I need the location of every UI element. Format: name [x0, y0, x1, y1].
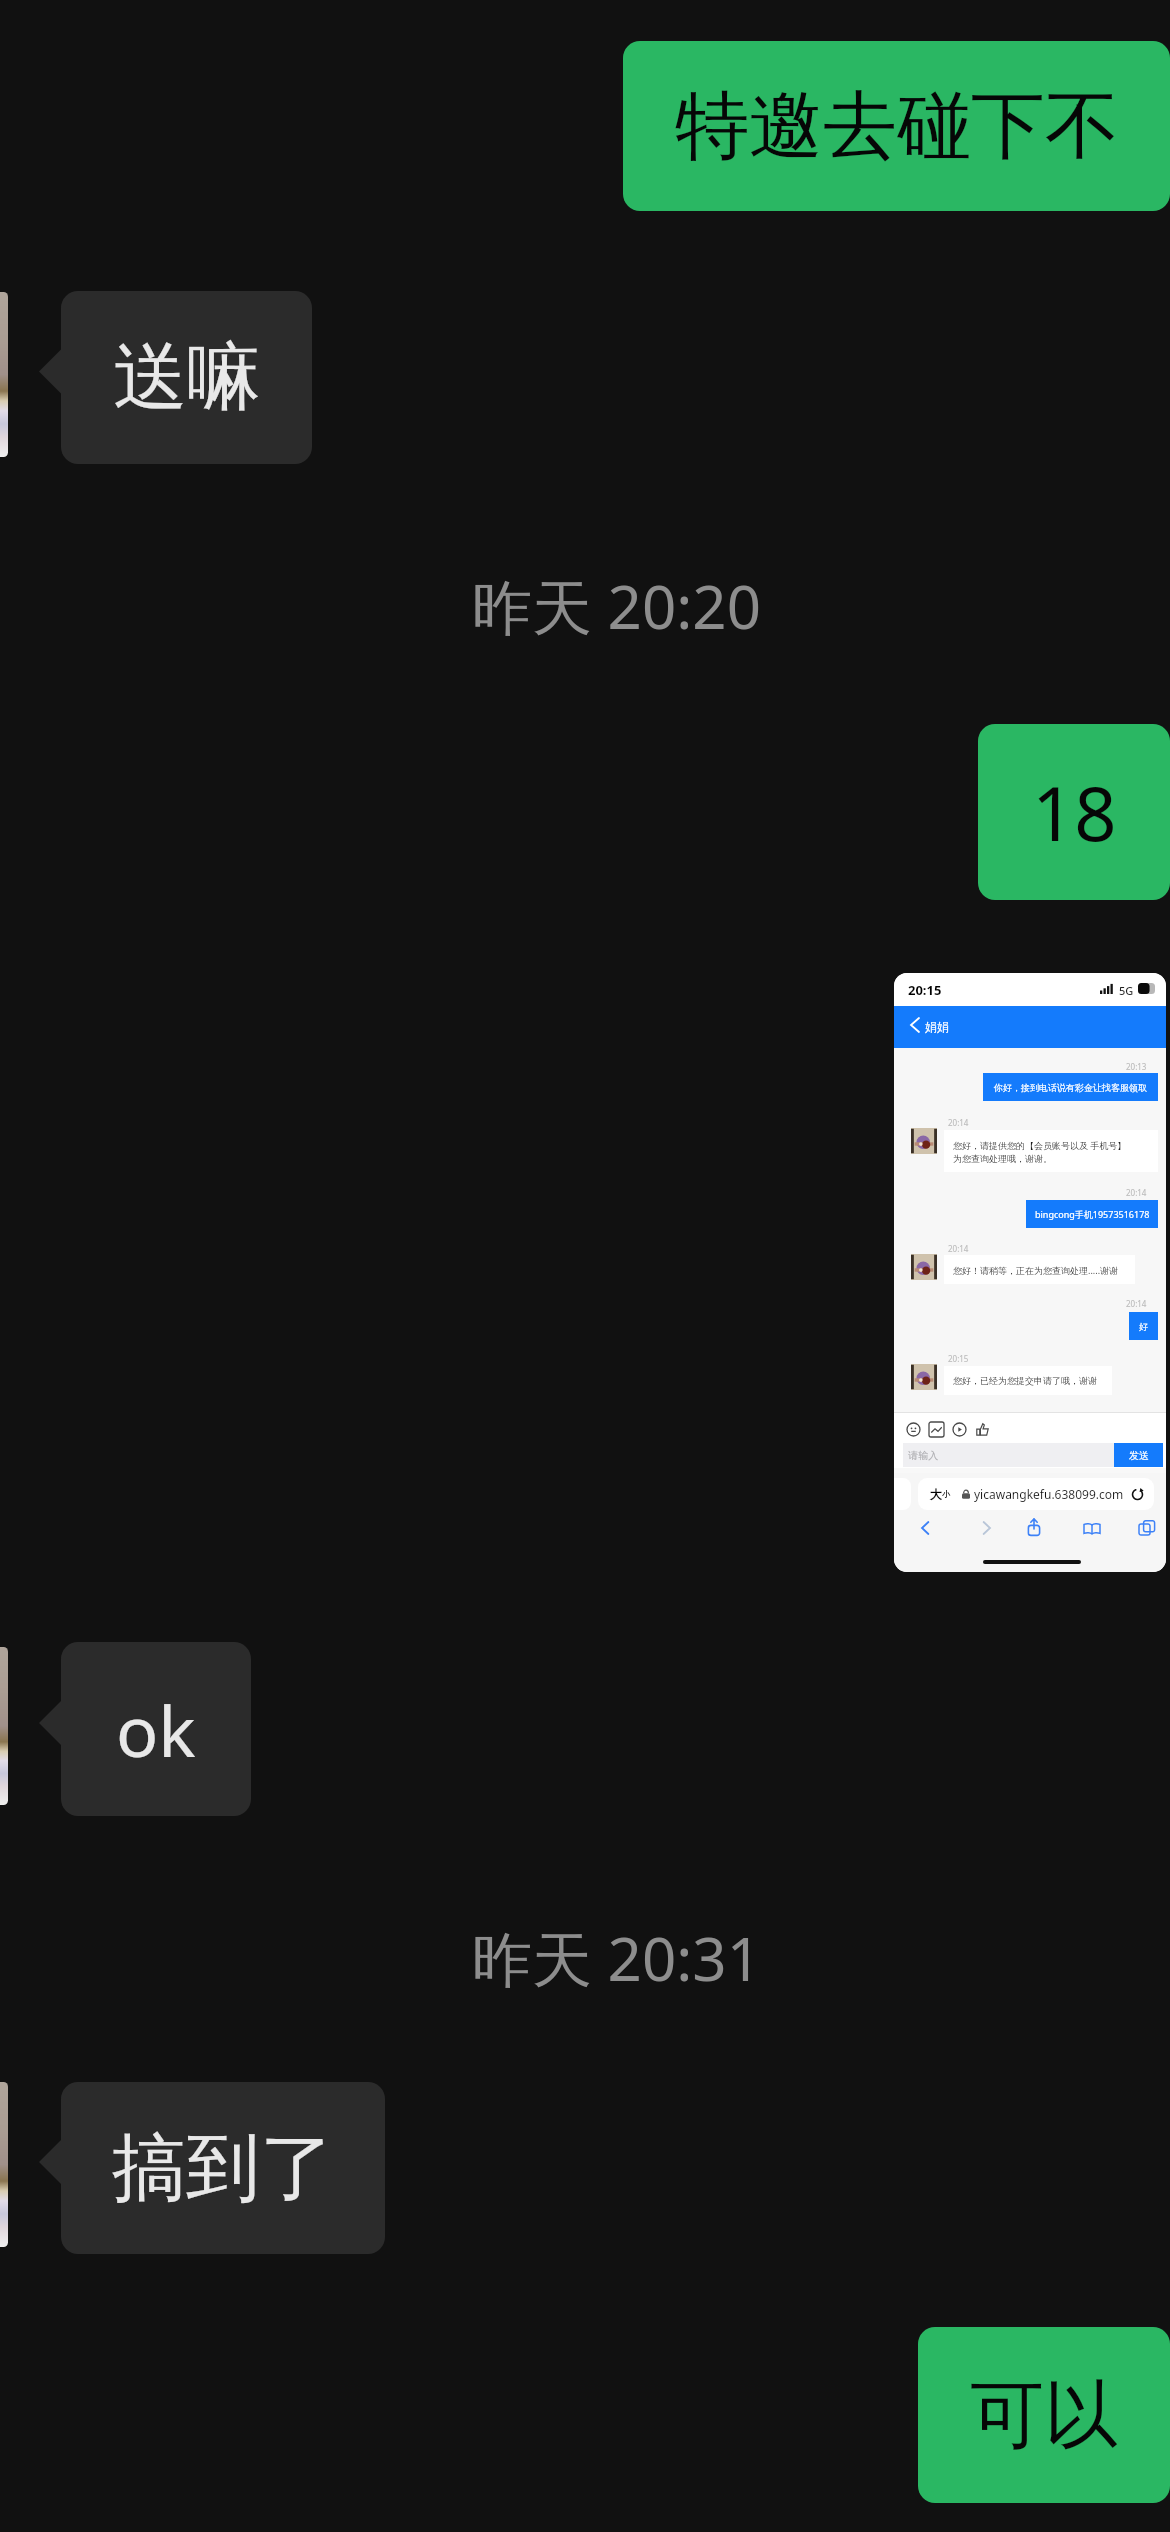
- button[interactable]: 您好！请稍等，正在为您查询处理.....谢谢: [944, 1255, 1135, 1284]
- staticText: bingcong手机19573516178: [1035, 1208, 1150, 1220]
- staticText: 20:15: [908, 981, 942, 999]
- button[interactable]: 搞到了: [61, 2082, 385, 2254]
- button[interactable]: Avatar: [911, 1128, 937, 1154]
- staticText: 20:14: [1126, 1187, 1147, 1198]
- staticText: 20:14: [948, 1243, 969, 1254]
- staticText: yicawangkefu.638099.com: [974, 1486, 1124, 1502]
- button[interactable]: Share: [1024, 1517, 1044, 1537]
- button[interactable]: 18: [978, 724, 1170, 900]
- staticText: 娟娟: [925, 1019, 949, 1034]
- staticText: 请输入: [903, 1448, 939, 1462]
- button[interactable]: Forward: [976, 1518, 996, 1538]
- staticText: 5G: [1119, 983, 1134, 998]
- staticText: 您好，已经为您提交申请了哦，谢谢: [953, 1375, 1097, 1386]
- staticText: 20:14: [1126, 1298, 1147, 1309]
- staticText: 搞到了: [112, 2122, 334, 2215]
- staticText: 20:13: [1126, 1061, 1147, 1072]
- staticText: ok: [116, 1682, 196, 1777]
- button[interactable]: 发送: [1114, 1443, 1163, 1467]
- button[interactable]: 送嘛: [61, 291, 312, 464]
- button[interactable]: Avatar: [911, 1364, 937, 1390]
- staticText: 昨天 20:31: [472, 1917, 761, 1999]
- staticText: 发送: [1129, 1449, 1149, 1462]
- staticText: 送嘛: [113, 331, 261, 424]
- button[interactable]: 好: [1129, 1312, 1158, 1340]
- button[interactable]: Back: [916, 1518, 936, 1538]
- staticText: 20:15: [948, 1353, 969, 1364]
- staticText: 20:14: [948, 1117, 969, 1128]
- button[interactable]: ok: [61, 1642, 251, 1816]
- staticText: 可以: [970, 2369, 1118, 2462]
- staticText: 你好，接到电话说有彩金让找客服领取: [994, 1082, 1147, 1093]
- staticText: 您好！请稍等，正在为您查询处理.....谢谢: [953, 1264, 1119, 1276]
- button[interactable]: Tabs: [1137, 1518, 1157, 1538]
- staticText: 18: [1032, 762, 1117, 863]
- button[interactable]: Bookmarks: [1082, 1519, 1102, 1539]
- button[interactable]: 特邀去碰下不: [623, 41, 1170, 211]
- button[interactable]: 你好，接到电话说有彩金让找客服领取: [983, 1073, 1158, 1101]
- staticText: 好: [1139, 1321, 1148, 1332]
- staticText: 小: [942, 1489, 950, 1499]
- button[interactable]: 可以: [918, 2327, 1170, 2503]
- button[interactable]: Avatar: [911, 1254, 937, 1280]
- button[interactable]: Photo: [894, 973, 1166, 1572]
- button[interactable]: 您好，已经为您提交申请了哦，谢谢: [944, 1366, 1112, 1395]
- button[interactable]: bingcong手机19573516178: [1026, 1200, 1158, 1228]
- staticText: 大: [930, 1487, 942, 1502]
- staticText: 昨天 20:20: [472, 565, 761, 647]
- staticText: 您好，请提供您的【会员账号以及 手机号】 为您查询处理哦，谢谢。: [953, 1139, 1127, 1164]
- button[interactable]: 大: [918, 1478, 1154, 1510]
- staticText: 特邀去碰下不: [675, 80, 1119, 173]
- button[interactable]: 您好，请提供您的【会员账号以及 手机号】 为您查询处理哦，谢谢。: [944, 1130, 1158, 1172]
